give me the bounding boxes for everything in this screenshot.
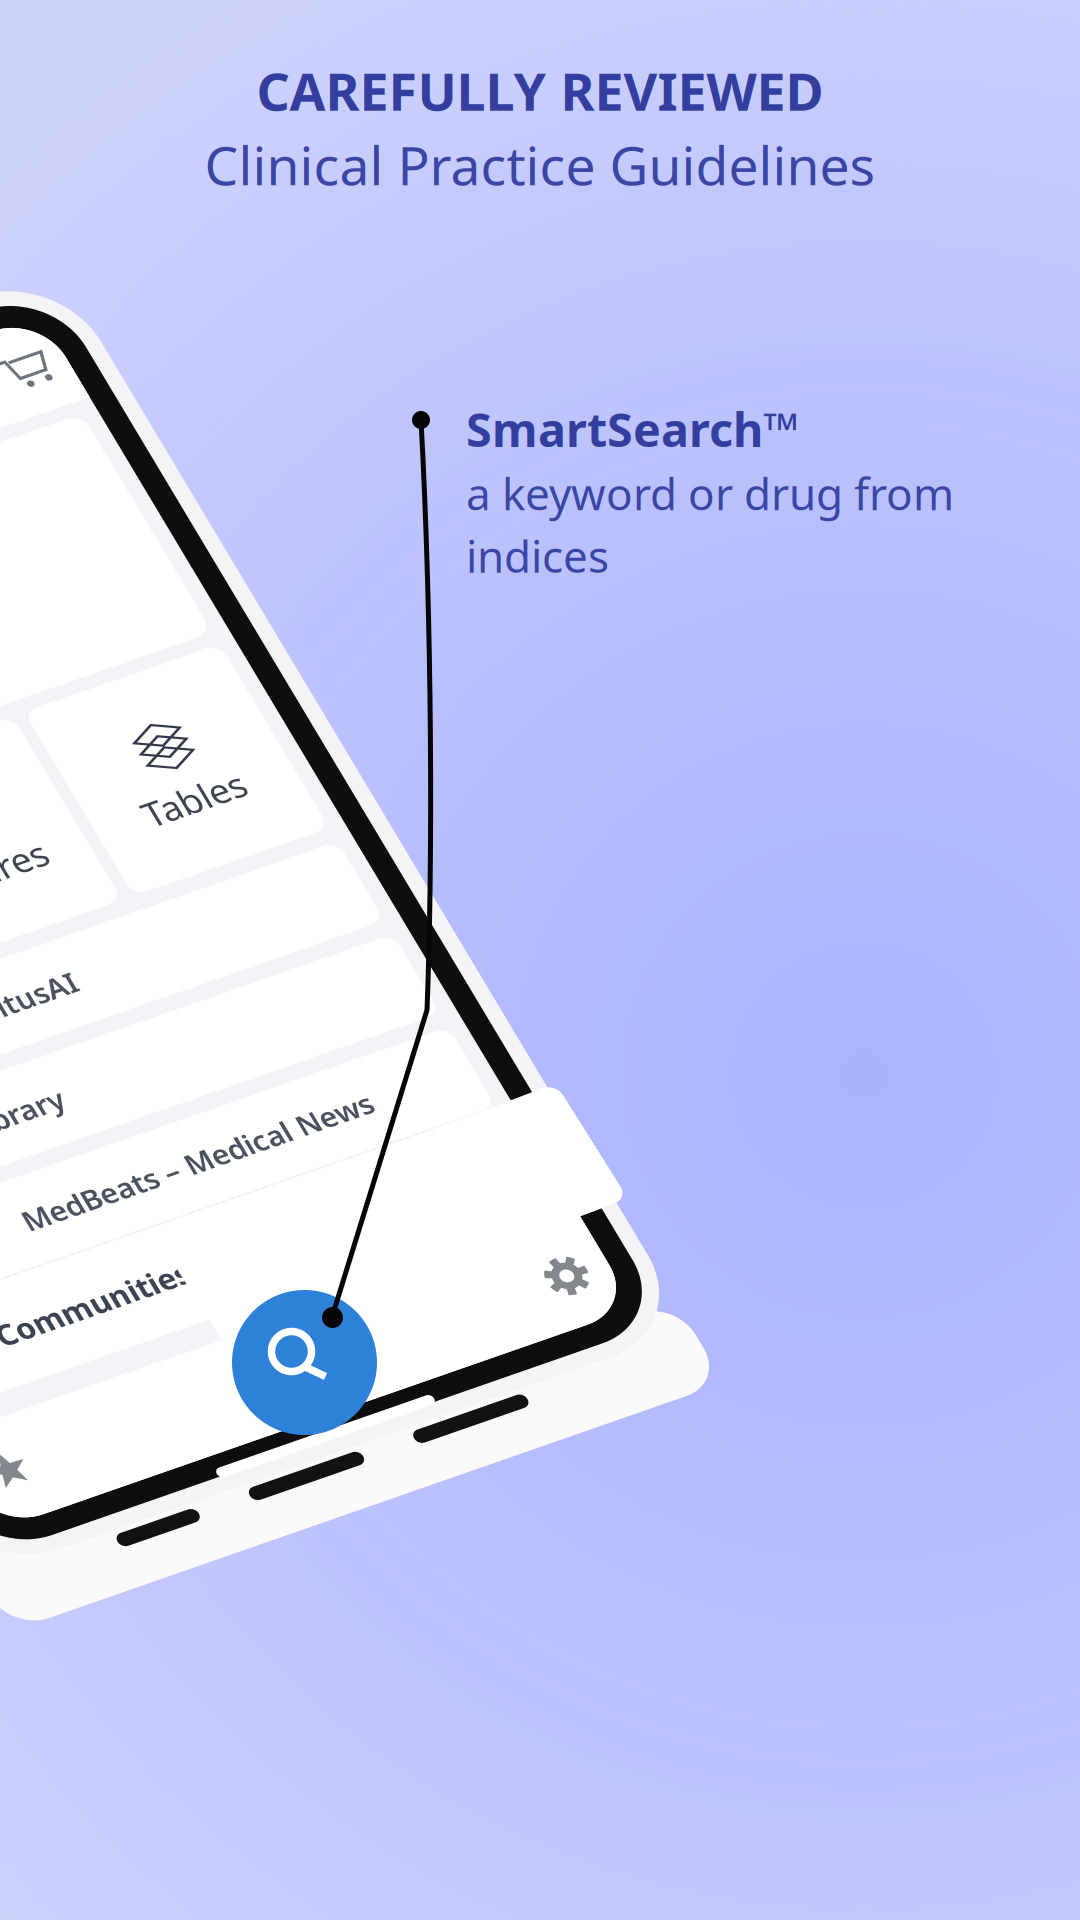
button[interactable]: Communities [0, 1455, 62, 1563]
staticText: Clinical Practice Guidelines [204, 129, 875, 200]
staticText: CAREFULLY REVIEWED [256, 56, 823, 125]
staticText: SmartSearch™ [466, 398, 799, 460]
staticText: Tables [0, 1032, 11, 1080]
staticText: a keyword or drug from [466, 464, 954, 522]
button[interactable]: Library [0, 1253, 62, 1345]
staticText: indices [466, 526, 609, 585]
button[interactable]: Tables [0, 915, 62, 1129]
button[interactable]: Settings [12, 1618, 58, 1664]
button[interactable]: MedBeats – Medical News [0, 1361, 62, 1453]
button[interactable]: ConsultusAI [0, 1145, 62, 1237]
